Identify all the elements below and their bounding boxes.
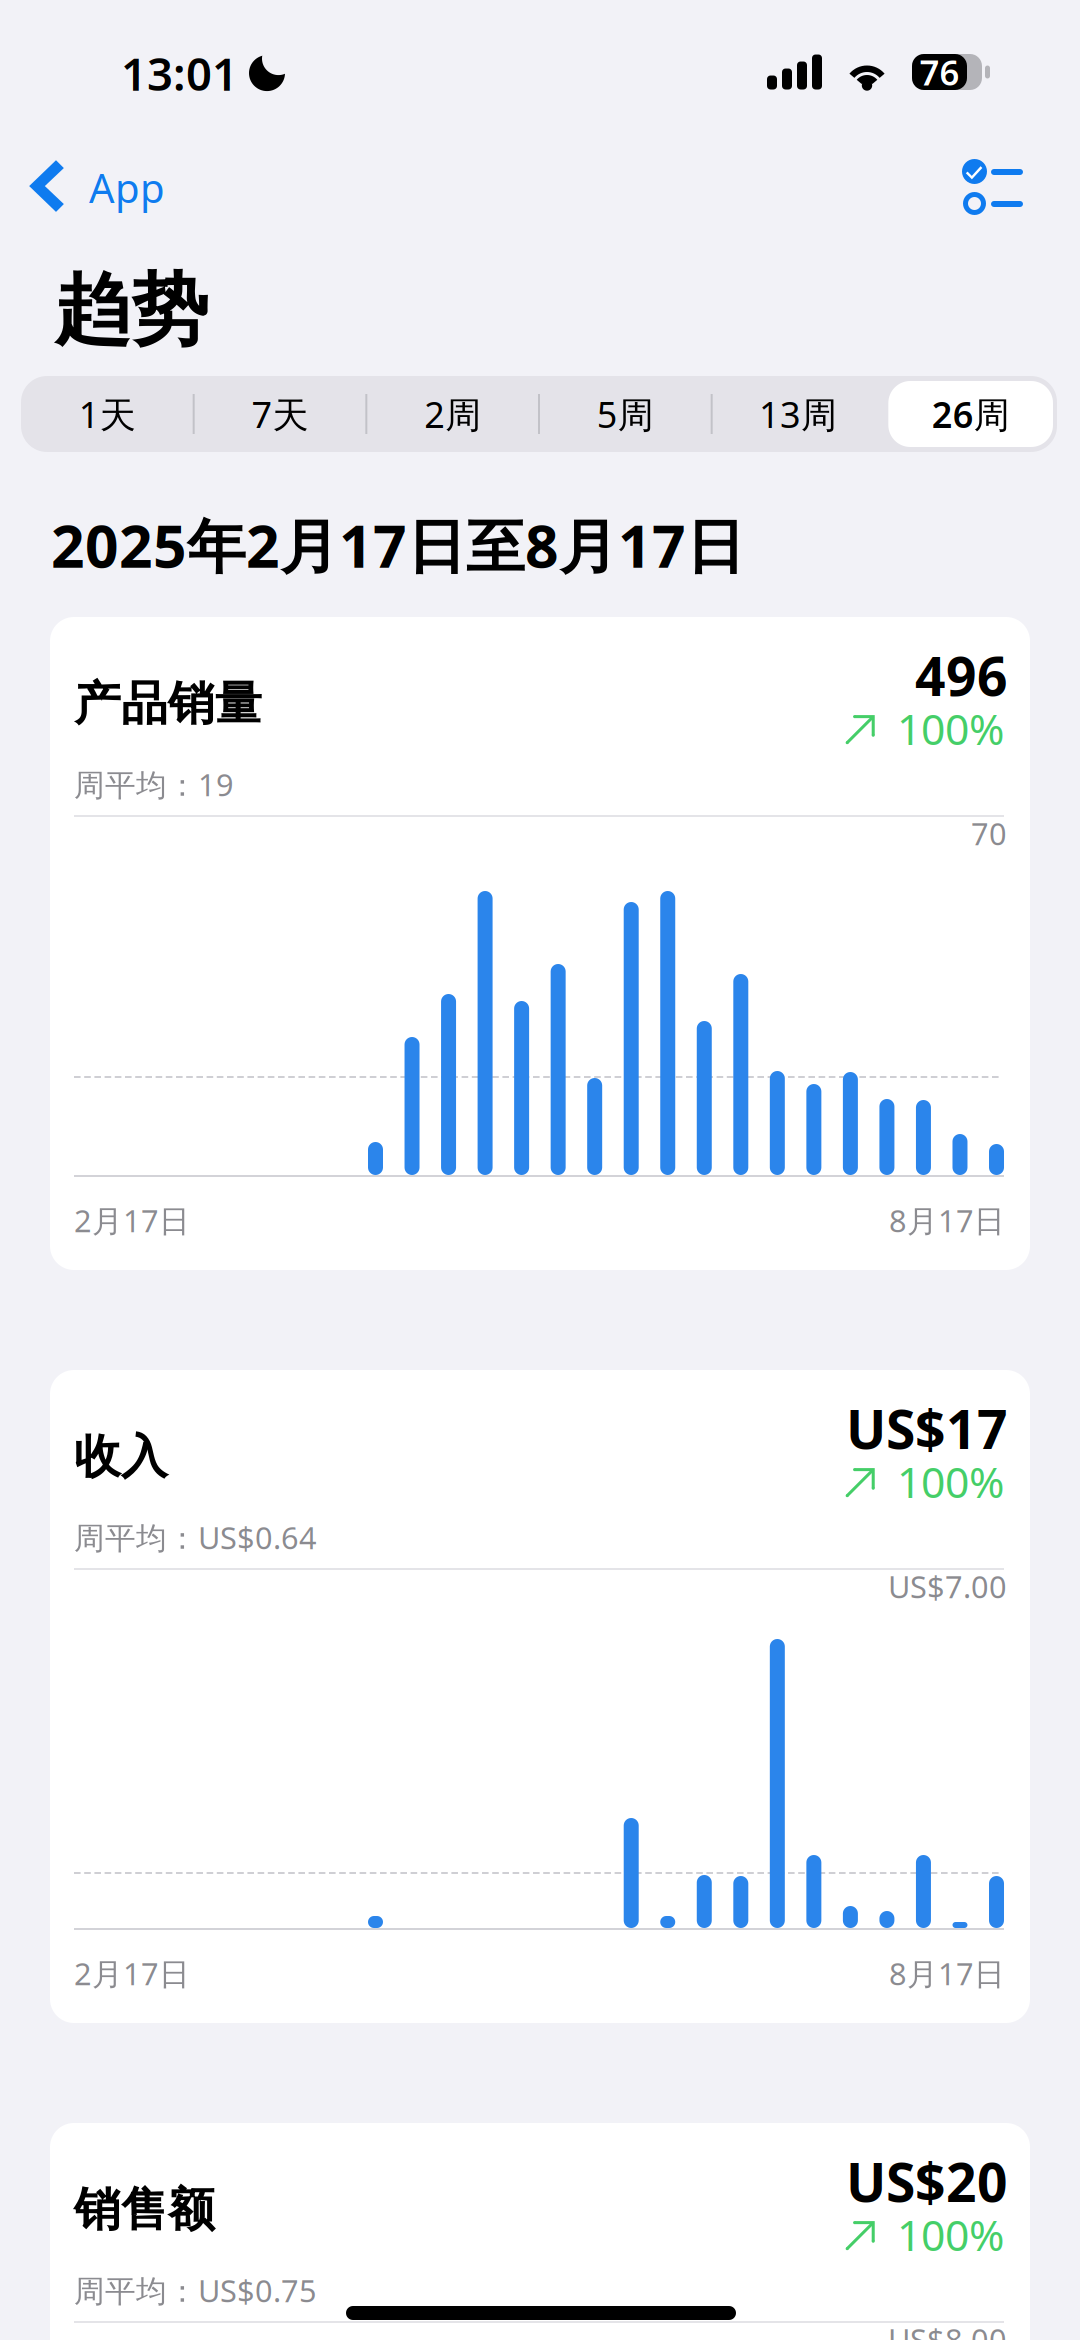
staticText: US$8.00 — [888, 2319, 1007, 2340]
staticText: 趋势 — [54, 263, 208, 358]
staticText: 周平均：US$0.75 — [74, 2270, 317, 2311]
staticText: 100% — [897, 700, 1004, 757]
staticText: 26周 — [932, 390, 1010, 438]
staticText: 2025年2月17日至8月17日 — [51, 506, 745, 584]
staticText: 8月17日 — [889, 1200, 1005, 1241]
button[interactable]: Filter apps — [940, 145, 1045, 229]
button[interactable]: 2周 — [366, 376, 539, 452]
button[interactable]: 5周 — [539, 376, 712, 452]
staticText: App — [89, 161, 165, 214]
staticText: 100% — [897, 1453, 1004, 1510]
staticText: 76 — [919, 49, 959, 95]
staticText: 13:01 — [121, 43, 238, 103]
button[interactable]: 1天 — [21, 376, 194, 452]
staticText: 1天 — [79, 390, 136, 438]
staticText: 周平均：19 — [74, 764, 234, 805]
staticText: US$20 — [846, 2146, 1008, 2217]
staticText: 13周 — [759, 390, 837, 438]
button[interactable]: 26周 — [884, 376, 1057, 452]
button[interactable]: App — [0, 141, 189, 234]
staticText: 2月17日 — [74, 1200, 190, 1241]
staticText: US$7.00 — [888, 1566, 1007, 1607]
staticText: 70 — [971, 813, 1007, 854]
staticText: 5周 — [597, 390, 654, 438]
button[interactable]: 7天 — [194, 376, 366, 452]
staticText: 7天 — [251, 390, 308, 438]
staticText: 周平均：US$0.64 — [74, 1517, 317, 1558]
staticText: 产品销量 — [74, 675, 262, 732]
staticText: 2周 — [424, 390, 481, 438]
staticText: 收入 — [74, 1428, 168, 1485]
staticText: 100% — [897, 2206, 1004, 2263]
staticText: 8月17日 — [889, 1953, 1005, 1994]
staticText: 2月17日 — [74, 1953, 190, 1994]
staticText: US$17 — [846, 1393, 1008, 1464]
staticText: 销售额 — [74, 2181, 215, 2238]
staticText: 496 — [915, 640, 1008, 711]
button[interactable]: 13周 — [712, 376, 884, 452]
